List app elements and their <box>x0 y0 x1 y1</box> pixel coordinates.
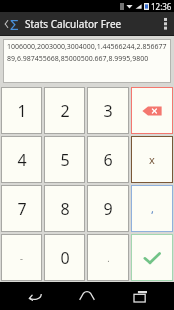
staticText: 5 <box>60 149 70 171</box>
staticText: 6 <box>103 149 113 171</box>
button[interactable]: 3 <box>87 87 129 134</box>
button[interactable]: 9 <box>87 185 129 232</box>
button[interactable]: 1 <box>1 87 42 134</box>
button[interactable]: 5 <box>44 136 85 183</box>
staticText: Σ <box>10 14 19 34</box>
button[interactable]: Back <box>15 282 53 310</box>
button[interactable]: Backspace <box>131 87 173 134</box>
staticText: 2 <box>60 100 70 122</box>
button[interactable]: 4 <box>1 136 42 183</box>
button[interactable]: - <box>1 234 42 281</box>
staticText: x <box>149 152 155 167</box>
staticText: Stats Calculator Free <box>25 17 122 31</box>
button[interactable]: x <box>131 136 173 183</box>
staticText: , <box>151 201 154 216</box>
staticText: 7 <box>17 198 27 220</box>
button[interactable]: 6 <box>87 136 129 183</box>
button[interactable]: . <box>87 234 129 281</box>
staticText: - <box>20 252 23 264</box>
button[interactable]: Home <box>68 282 106 310</box>
staticText: 1 <box>17 100 27 122</box>
button[interactable]: More options <box>156 12 174 35</box>
staticText: 12:36 <box>151 1 172 12</box>
staticText: 0 <box>60 247 70 269</box>
button[interactable]: Navigate up <box>3 14 20 34</box>
button[interactable]: Recent apps <box>121 282 159 310</box>
button[interactable]: Confirm <box>131 234 173 281</box>
staticText: 8 <box>60 198 70 220</box>
staticText: . <box>107 252 110 264</box>
button[interactable]: 2 <box>44 87 85 134</box>
staticText: 4 <box>17 149 27 171</box>
button[interactable]: 0 <box>44 234 85 281</box>
button[interactable]: 1006000,2003000,3004000,1.44566244,2.856… <box>3 39 171 83</box>
staticText: 9 <box>103 198 113 220</box>
button[interactable]: , <box>131 185 173 232</box>
staticText: 1006000,2003000,3004000,1.44566244,2.856… <box>7 42 167 63</box>
button[interactable]: 8 <box>44 185 85 232</box>
button[interactable]: 7 <box>1 185 42 232</box>
staticText: 3 <box>103 100 113 122</box>
